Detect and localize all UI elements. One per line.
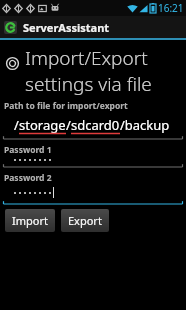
staticText: Export <box>68 213 102 228</box>
staticText: Password 2 <box>4 172 52 184</box>
staticText: settings via file <box>25 71 152 97</box>
button[interactable] <box>3 159 183 168</box>
button[interactable]: Export <box>61 209 109 232</box>
staticText: Import <box>12 213 48 228</box>
button[interactable]: ServerAssistant <box>0 16 186 38</box>
staticText: / <box>66 116 71 134</box>
staticText: ServerAssistant <box>23 20 110 35</box>
staticText: Import/Export <box>25 45 148 71</box>
staticText: Password 1 <box>4 144 52 156</box>
button[interactable]: / <box>3 116 183 140</box>
button[interactable] <box>3 187 183 205</box>
button[interactable]: Import <box>5 209 55 232</box>
staticText: Path to file for import/export <box>4 100 128 112</box>
staticText: /backup <box>120 116 170 134</box>
other: Sync settings <box>6 57 19 70</box>
staticText: storage <box>19 116 66 134</box>
staticText: 16:21 <box>158 1 184 15</box>
staticText: sdcard0 <box>71 116 120 134</box>
staticText: / <box>14 116 19 134</box>
